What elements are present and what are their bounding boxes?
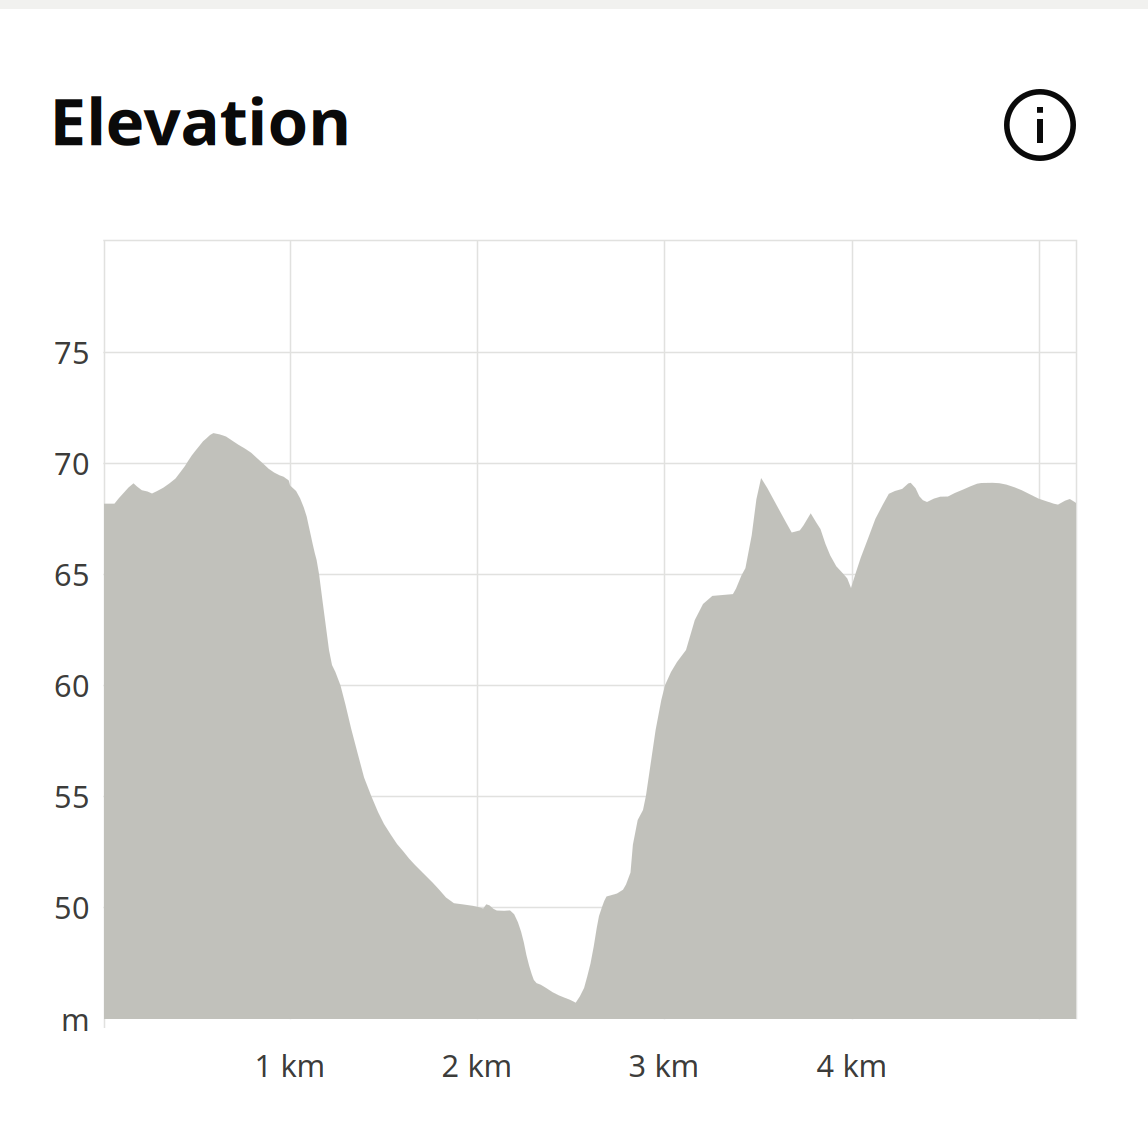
staticText: 55 — [54, 776, 90, 816]
staticText: m — [61, 999, 90, 1039]
staticText: 3 km — [628, 1045, 699, 1085]
button[interactable]: About elevation — [992, 77, 1088, 173]
staticText: 70 — [54, 443, 90, 483]
staticText: 65 — [54, 554, 90, 594]
staticText: 75 — [54, 332, 90, 372]
staticText: 4 km — [816, 1045, 887, 1085]
staticText: Elevation — [49, 77, 350, 163]
staticText: 50 — [54, 887, 90, 927]
staticText: 60 — [54, 665, 90, 705]
staticText: 1 km — [254, 1045, 325, 1085]
staticText: 2 km — [441, 1045, 512, 1085]
